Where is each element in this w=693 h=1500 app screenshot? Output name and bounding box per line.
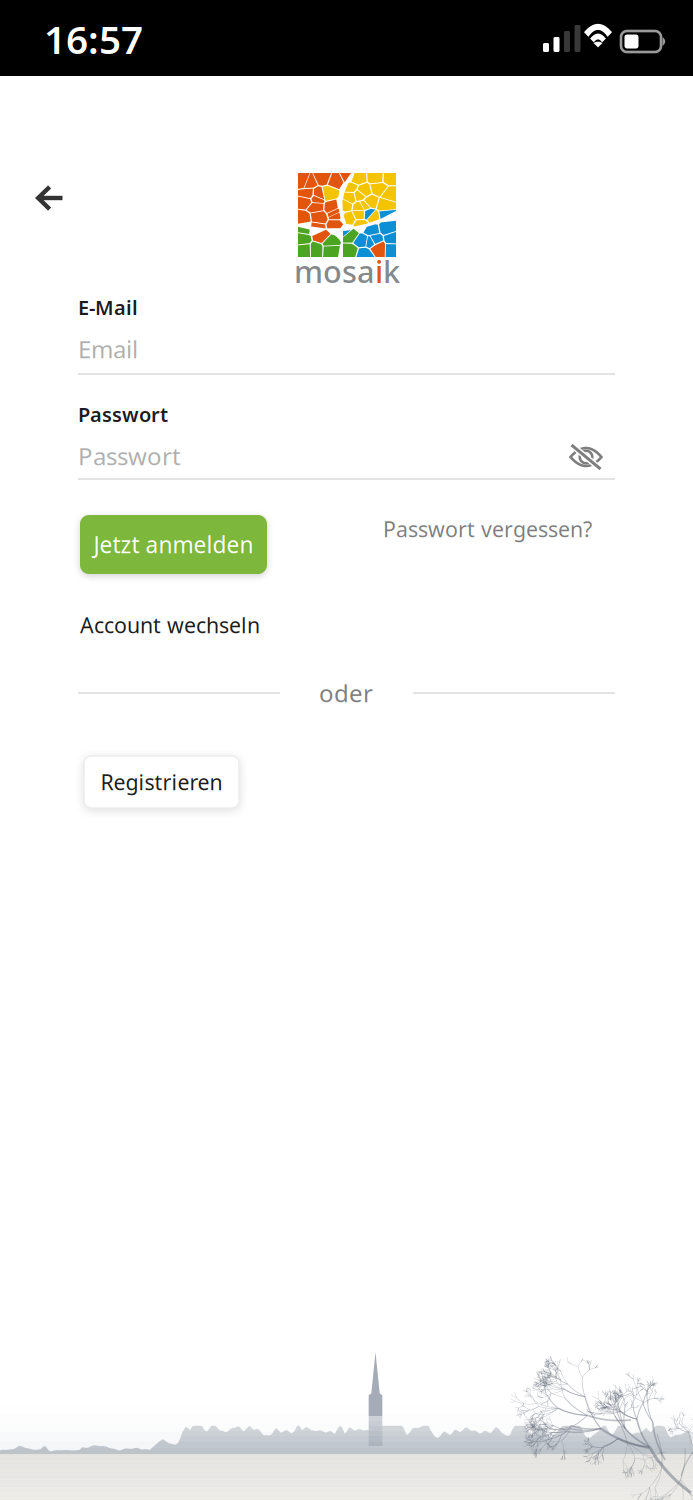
button[interactable]: Passwort anzeigen bbox=[566, 440, 606, 474]
staticText: Account wechseln bbox=[80, 611, 260, 639]
button[interactable]: Registrieren bbox=[84, 756, 239, 808]
staticText: 16:57 bbox=[44, 13, 143, 65]
staticText: Jetzt anmelden bbox=[93, 529, 253, 559]
staticText: oder bbox=[319, 677, 373, 709]
button[interactable]: Passwort vergessen? bbox=[383, 513, 591, 545]
staticText: Passwort bbox=[78, 401, 168, 428]
staticText: Email bbox=[78, 333, 138, 365]
button[interactable]: Jetzt anmelden bbox=[80, 515, 267, 574]
staticText: i bbox=[375, 251, 383, 291]
staticText: E-Mail bbox=[78, 294, 138, 321]
staticText: Passwort vergessen? bbox=[383, 515, 592, 543]
staticText: k bbox=[383, 251, 400, 291]
staticText: mosa bbox=[294, 251, 375, 291]
staticText: Registrieren bbox=[100, 768, 222, 796]
staticText: Passwort bbox=[78, 440, 181, 472]
button[interactable]: Zurück bbox=[22, 170, 78, 226]
button[interactable]: Account wechseln bbox=[80, 610, 262, 640]
